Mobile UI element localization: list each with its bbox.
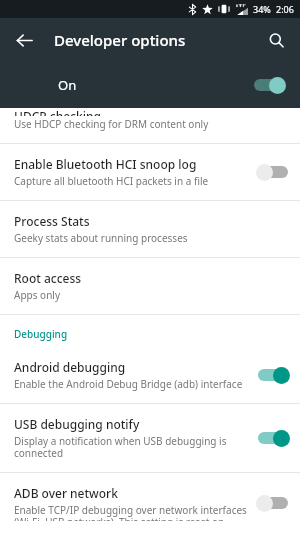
staticText: Capture all bluetooth HCI packets in a f… [14, 174, 209, 188]
staticText: Developer options [54, 30, 186, 50]
staticText: Use HDCP checking for DRM content only [14, 117, 209, 131]
staticText: Apps only [14, 288, 60, 302]
button[interactable]: Android debugging [0, 347, 300, 403]
staticText: On [58, 76, 77, 94]
button[interactable]: Root access [0, 258, 300, 314]
staticText: ADB over network [14, 485, 118, 501]
staticText: Geeky stats about running processes [14, 231, 188, 245]
button[interactable]: USB debugging notify [0, 404, 300, 472]
button[interactable]: Search [258, 22, 294, 58]
staticText: Process Stats [14, 213, 90, 229]
button[interactable]: Back [6, 22, 42, 58]
button[interactable]: ADB over network [0, 473, 300, 533]
staticText: Enable the Android Debug Bridge (adb) in… [14, 377, 243, 391]
staticText: 2:06 [276, 3, 294, 15]
staticText: Enable TCP/IP debugging over network int… [14, 503, 247, 521]
button[interactable]: Enable Bluetooth HCI snoop log [0, 144, 300, 200]
button[interactable]: Process Stats [0, 201, 300, 257]
staticText: Display a notification when USB debuggin… [14, 434, 227, 460]
staticText: Debugging [14, 327, 68, 341]
staticText: HDCP checking [14, 108, 101, 116]
staticText: 34% [253, 3, 271, 15]
button[interactable]: On [0, 62, 300, 108]
button[interactable]: HDCP checking [0, 108, 300, 143]
staticText: Android debugging [14, 359, 126, 375]
staticText: USB debugging notify [14, 416, 140, 432]
staticText: Root access [14, 270, 82, 286]
staticText: Enable Bluetooth HCI snoop log [14, 156, 197, 172]
